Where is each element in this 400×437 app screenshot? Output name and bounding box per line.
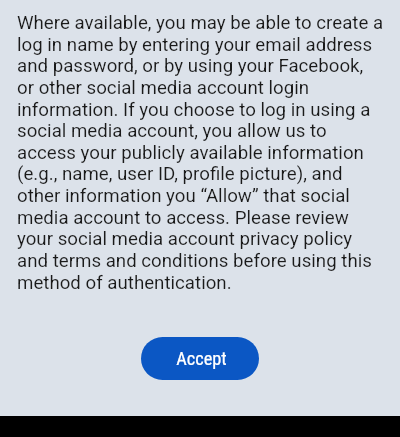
staticText: and password, or by using your Facebook,: [17, 55, 364, 77]
staticText: media account to access. Please review: [17, 207, 349, 229]
staticText: Where available, you may be able to crea…: [17, 12, 384, 34]
staticText: your social media account privacy policy: [17, 228, 353, 250]
staticText: information. If you choose to log in usi…: [17, 99, 371, 121]
staticText: Accept: [176, 348, 227, 369]
staticText: access your publicly available informati…: [17, 142, 364, 164]
staticText: social media account, you allow us to: [17, 120, 327, 142]
staticText: and terms and conditions before using th…: [17, 250, 372, 272]
staticText: method of authentication.: [17, 272, 232, 294]
staticText: (e.g., name, user ID, profile picture), …: [17, 163, 343, 185]
button[interactable]: Accept: [141, 337, 259, 380]
staticText: log in name by entering your email addre…: [17, 34, 373, 56]
staticText: or other social media account login: [17, 77, 310, 99]
staticText: other information you “Allow” that socia…: [17, 185, 350, 207]
